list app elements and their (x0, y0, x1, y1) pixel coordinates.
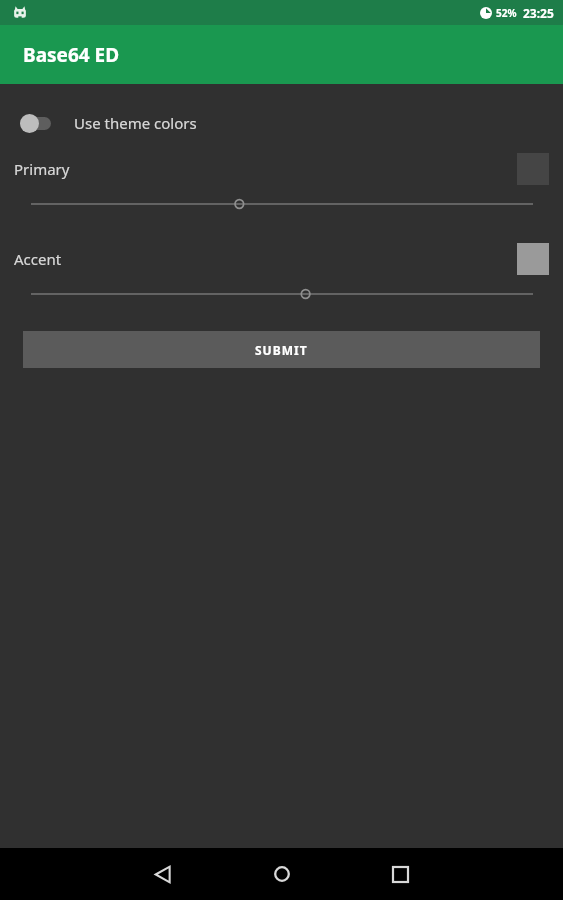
staticText: Base64 ED (23, 42, 120, 68)
button[interactable]: Use theme colors (0, 101, 563, 145)
staticText: Primary (14, 159, 70, 179)
staticText: SUBMIT (255, 342, 308, 358)
button[interactable]: Back (140, 852, 184, 896)
button[interactable]: SUBMIT (23, 331, 540, 368)
staticText: 23:25 (523, 5, 554, 21)
button[interactable]: Accent slider (0, 282, 563, 306)
staticText: Accent (14, 249, 62, 269)
staticText: 52% (496, 6, 517, 20)
button[interactable]: Home (260, 852, 304, 896)
staticText: Use theme colors (74, 113, 197, 133)
button[interactable]: Recent apps (378, 852, 422, 896)
button[interactable]: Primary slider (0, 192, 563, 216)
